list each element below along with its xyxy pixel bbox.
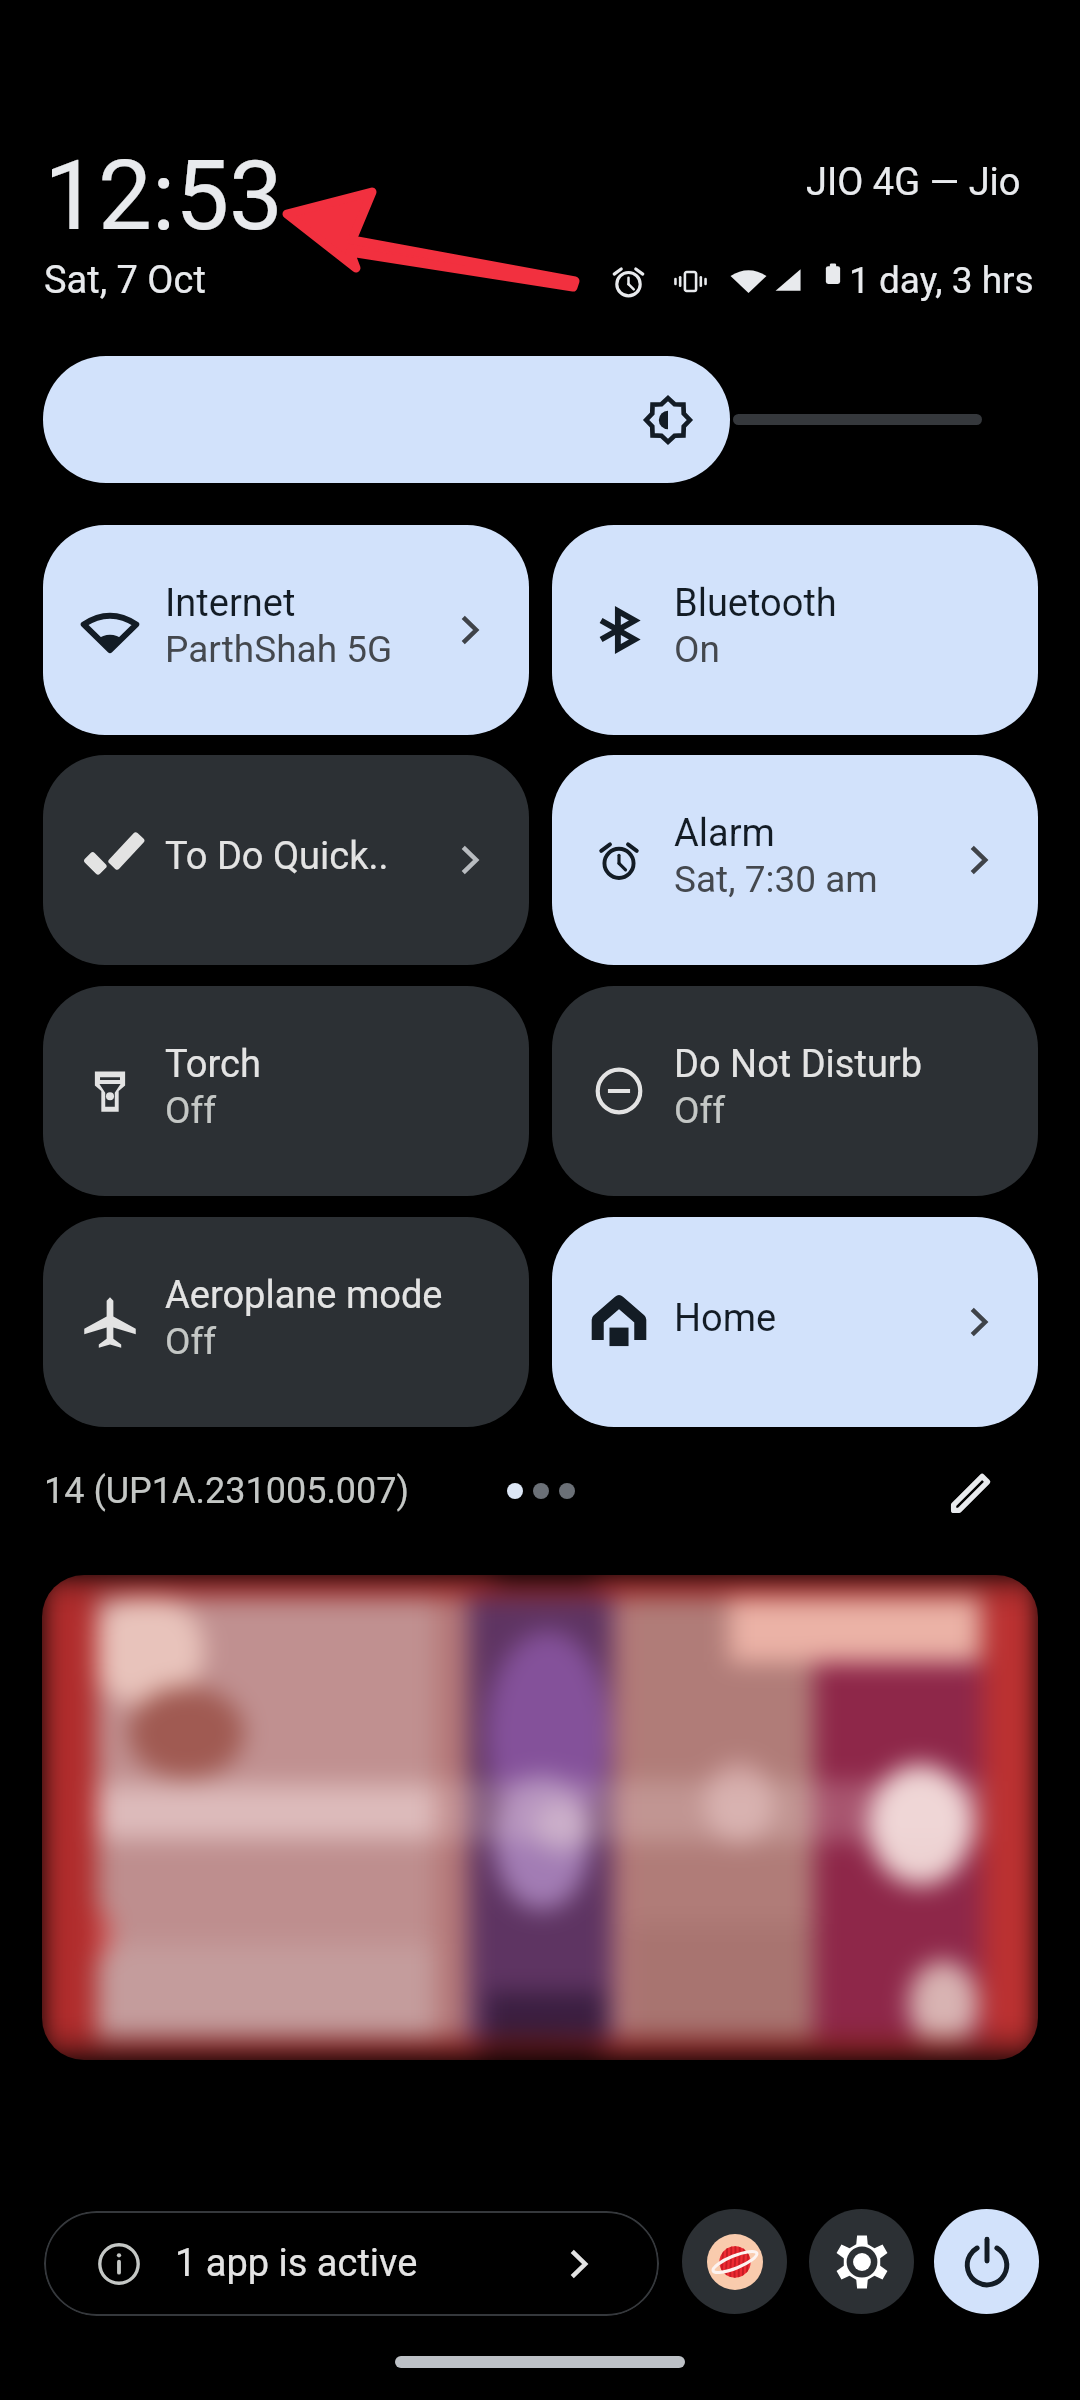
staticText: 1 app is active [175, 2241, 418, 2286]
staticText: Do Not Disturb [674, 1042, 923, 1087]
staticText: JIO 4G — Jio [806, 160, 1021, 205]
button[interactable]: Power [934, 2209, 1039, 2314]
staticText: 14 (UP1A.231005.007) [44, 1470, 410, 1512]
staticText: Alarm [674, 811, 775, 856]
button[interactable]: User [682, 2209, 787, 2314]
staticText: Torch [165, 1042, 261, 1087]
staticText: ParthShah 5G [165, 628, 393, 671]
button[interactable]: Media [42, 1575, 1038, 2060]
staticText: Off [674, 1089, 726, 1132]
button[interactable]: Bluetooth [552, 525, 1038, 735]
button[interactable]: Edit tiles [930, 1450, 1014, 1534]
button[interactable]: Home [552, 1217, 1038, 1427]
button[interactable]: Aeroplane mode [43, 1217, 529, 1427]
staticText: On [674, 628, 720, 671]
button[interactable]: Alarm [552, 755, 1038, 965]
staticText: Sat, 7 Oct [44, 258, 206, 303]
staticText: Off [165, 1320, 217, 1363]
staticText: Internet [165, 581, 296, 626]
button[interactable]: Settings [809, 2209, 914, 2314]
staticText: To Do Quick.. [165, 834, 389, 879]
staticText: Aeroplane mode [165, 1273, 443, 1318]
staticText: 12:53 [44, 140, 284, 253]
button[interactable]: Torch [43, 986, 529, 1196]
staticText: Sat, 7:30 am [674, 858, 878, 901]
button[interactable]: Brightness [43, 356, 730, 483]
button[interactable]: Internet [43, 525, 529, 735]
staticText: Home [674, 1296, 777, 1341]
staticText: Off [165, 1089, 217, 1132]
staticText: 1 day, 3 hrs [849, 259, 1034, 302]
staticText: Bluetooth [674, 581, 837, 626]
button[interactable]: 1 app is active [44, 2211, 659, 2316]
button[interactable]: Do Not Disturb [552, 986, 1038, 1196]
button[interactable]: To Do Quick.. [43, 755, 529, 965]
